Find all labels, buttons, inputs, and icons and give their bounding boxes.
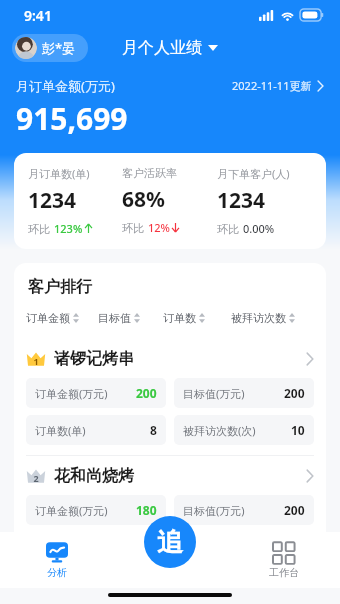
staticText: 月订单数(单) bbox=[28, 166, 90, 181]
staticText: 被拜访次数 bbox=[231, 311, 286, 325]
staticText: 月下单客户(人) bbox=[217, 166, 290, 181]
staticText: 订单数(单) bbox=[35, 540, 86, 555]
staticText: 工作台 bbox=[269, 566, 299, 579]
staticText: 200 bbox=[284, 385, 305, 401]
staticText: 客户排行 bbox=[28, 277, 92, 297]
staticText: 花和尚烧烤 bbox=[54, 466, 134, 486]
staticText: 订单金额(万元) bbox=[35, 503, 108, 518]
staticText: 环比 bbox=[122, 221, 144, 235]
staticText: 915,699 bbox=[16, 98, 128, 139]
staticText: 彭*晏 bbox=[42, 39, 76, 57]
staticText: 环比 bbox=[28, 222, 50, 236]
staticText: 10 bbox=[291, 422, 305, 438]
button[interactable]: 1 bbox=[14, 339, 326, 455]
staticText: 诸锣记烤串 bbox=[54, 349, 134, 369]
button[interactable]: 工作台 bbox=[253, 537, 315, 583]
staticText: 订单金额 bbox=[26, 311, 70, 325]
staticText: 追 bbox=[157, 526, 183, 559]
button[interactable]: 订单金额 bbox=[26, 309, 98, 327]
button[interactable]: 分析 bbox=[30, 537, 84, 583]
staticText: 订单数(单) bbox=[35, 423, 86, 438]
staticText: 订单金额(万元) bbox=[35, 386, 108, 401]
button[interactable]: 彭*晏 bbox=[12, 34, 88, 62]
staticText: 1234 bbox=[217, 186, 266, 215]
staticText: 2 bbox=[33, 472, 39, 484]
button[interactable]: 目标值 bbox=[98, 309, 163, 327]
staticText: 8 bbox=[150, 422, 157, 438]
staticText: 10 bbox=[291, 539, 305, 555]
button[interactable]: 订单数 bbox=[163, 309, 231, 327]
staticText: 目标值(万元) bbox=[183, 503, 245, 518]
button[interactable]: 追 bbox=[144, 516, 196, 568]
staticText: 180 bbox=[136, 502, 157, 518]
staticText: 200 bbox=[284, 502, 305, 518]
button[interactable]: 月订单数(单) bbox=[14, 153, 326, 249]
staticText: 被拜访次数(次) bbox=[183, 540, 256, 555]
staticText: 0.00% bbox=[243, 221, 275, 236]
button[interactable]: 2022-11-11更新 bbox=[232, 76, 324, 95]
button[interactable]: 被拜访次数 bbox=[231, 309, 314, 327]
staticText: 客户活跃率 bbox=[122, 166, 177, 180]
staticText: 2022-11-11更新 bbox=[232, 78, 312, 93]
staticText: 月个人业绩 bbox=[122, 38, 202, 58]
staticText: 目标值(万元) bbox=[183, 386, 245, 401]
staticText: 环比 bbox=[217, 222, 239, 236]
staticText: 月订单金额(万元) bbox=[16, 77, 115, 95]
staticText: 123% bbox=[54, 221, 83, 236]
button[interactable]: 月个人业绩 bbox=[116, 34, 224, 62]
staticText: 1 bbox=[33, 355, 39, 367]
staticText: 12% bbox=[148, 220, 170, 235]
staticText: 68% bbox=[122, 185, 165, 214]
staticText: 被拜访次数(次) bbox=[183, 423, 256, 438]
staticText: 目标值 bbox=[98, 311, 131, 325]
staticText: 1234 bbox=[28, 186, 77, 215]
button[interactable]: 2 bbox=[14, 456, 326, 572]
staticText: 9:41 bbox=[24, 6, 52, 25]
staticText: 订单数 bbox=[163, 311, 196, 325]
staticText: 200 bbox=[136, 385, 157, 401]
staticText: 分析 bbox=[47, 566, 67, 579]
